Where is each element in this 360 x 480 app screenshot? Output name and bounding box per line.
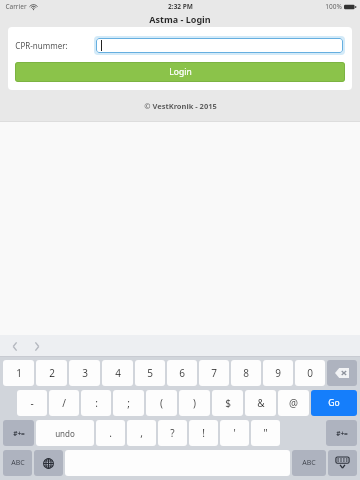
button[interactable]: 2 (36, 360, 67, 386)
button[interactable]: ; (113, 390, 144, 416)
button[interactable]: 4 (102, 360, 133, 386)
staticText: #+= (13, 429, 25, 438)
button[interactable]: #+= (326, 420, 357, 446)
staticText: Login (169, 66, 192, 78)
staticText: 7 (211, 366, 217, 380)
staticText: : (95, 396, 98, 410)
button[interactable] (96, 38, 343, 53)
staticText: CPR-nummer: (15, 40, 68, 51)
button[interactable]: Hide keyboard (328, 450, 357, 476)
button[interactable]: @ (278, 390, 309, 416)
staticText: $ (225, 396, 231, 410)
staticText: 9 (275, 366, 281, 380)
button[interactable]: Login (15, 62, 345, 82)
staticText: 5 (147, 366, 153, 380)
button[interactable]: : (81, 390, 111, 416)
button[interactable]: Previous field (8, 339, 22, 353)
staticText: 4 (115, 366, 121, 380)
button[interactable]: 0 (295, 360, 325, 386)
button[interactable]: undo (36, 420, 94, 446)
staticText: ? (170, 426, 175, 440)
staticText: - (30, 396, 34, 410)
staticText: ! (202, 426, 205, 440)
button[interactable]: & (245, 390, 276, 416)
staticText: ( (160, 396, 163, 410)
button[interactable]: ( (146, 390, 177, 416)
button[interactable]: 8 (231, 360, 261, 386)
button[interactable]: ABC (3, 450, 32, 476)
button[interactable]: Go (311, 390, 357, 416)
button[interactable]: ? (158, 420, 187, 446)
staticText: ABC (11, 458, 25, 468)
button[interactable]: ! (189, 420, 218, 446)
button[interactable]: 7 (199, 360, 229, 386)
button[interactable]: 1 (3, 360, 34, 386)
staticText: Go (328, 397, 340, 409)
button[interactable]: ) (179, 390, 210, 416)
staticText: Carrier (5, 2, 27, 11)
button[interactable]: $ (212, 390, 243, 416)
staticText: ) (193, 396, 196, 410)
button[interactable]: 3 (69, 360, 100, 386)
staticText: & (257, 396, 265, 410)
button[interactable]: / (49, 390, 79, 416)
staticText: 8 (243, 366, 249, 380)
staticText: / (62, 396, 66, 410)
button[interactable]: . (96, 420, 125, 446)
button[interactable]: 5 (135, 360, 165, 386)
staticText: @ (289, 396, 298, 410)
staticText: ; (127, 396, 130, 410)
staticText: 2 (49, 366, 55, 380)
staticText: 100% (325, 2, 342, 11)
button[interactable]: Delete (327, 360, 357, 386)
button[interactable]: ABC (292, 450, 326, 476)
button[interactable]: - (17, 390, 47, 416)
staticText: . (109, 426, 112, 440)
button[interactable]: Change keyboard language (34, 450, 63, 476)
button[interactable]: #+= (3, 420, 34, 446)
button[interactable]: ' (220, 420, 249, 446)
staticText: ABC (302, 458, 316, 468)
button[interactable]: " (251, 420, 280, 446)
staticText: © VestKronik - 2015 (144, 101, 217, 111)
button[interactable]: 6 (167, 360, 197, 386)
staticText: 2:32 PM (168, 2, 193, 11)
button[interactable]: , (127, 420, 156, 446)
staticText: #+= (336, 429, 348, 438)
staticText: , (140, 426, 143, 440)
staticText: undo (55, 428, 75, 439)
button[interactable]: Next field (30, 339, 44, 353)
button[interactable]: 9 (263, 360, 293, 386)
staticText: Astma - Login (149, 13, 211, 25)
staticText: 6 (179, 366, 185, 380)
staticText: ' (233, 426, 236, 440)
staticText: 1 (16, 366, 22, 380)
staticText: 0 (307, 366, 313, 380)
staticText: 3 (82, 366, 88, 380)
staticText: " (263, 426, 268, 440)
